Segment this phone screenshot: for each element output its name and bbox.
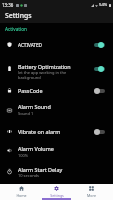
button[interactable]: Alarm Sound [0, 97, 113, 119]
button[interactable]: ACTIVATED [0, 36, 113, 54]
staticText: 100% [18, 153, 29, 158]
staticText: 54% [99, 2, 108, 8]
staticText: 10 seconds [18, 173, 39, 178]
button[interactable]: More [74, 184, 109, 200]
staticText: Alarm Volume [18, 145, 54, 152]
button[interactable]: PassCode [0, 81, 113, 99]
staticText: Alarm Start Delay [18, 166, 63, 173]
staticText: Alarm Sound [18, 103, 51, 110]
staticText: PassCode [18, 87, 43, 94]
button[interactable]: Home [4, 184, 39, 200]
staticText: Activation [5, 26, 27, 32]
button[interactable]: Alarm Start Delay [0, 160, 113, 182]
staticText: let the app working in the background [18, 70, 67, 80]
staticText: ACTIVATED [18, 42, 42, 48]
staticText: Sound 1 [18, 111, 34, 116]
staticText: Vibrate on alarm [18, 128, 61, 135]
button[interactable]: Toggle [93, 87, 106, 94]
staticText: Battery Optimization [18, 63, 71, 70]
button[interactable]: Toggle [93, 128, 106, 135]
staticText: Home [16, 193, 27, 198]
staticText: Settings [50, 193, 64, 198]
button[interactable]: Alarm Volume [0, 139, 113, 161]
staticText: More [87, 193, 96, 198]
button[interactable]: Vibrate on alarm [0, 122, 113, 140]
button[interactable]: Battery Optimization [0, 57, 113, 79]
staticText: 13:36 [2, 2, 14, 8]
button[interactable]: Toggle [93, 41, 106, 48]
staticText: Settings [5, 11, 32, 20]
button[interactable]: Toggle [93, 65, 106, 72]
button[interactable]: Settings [39, 184, 74, 200]
